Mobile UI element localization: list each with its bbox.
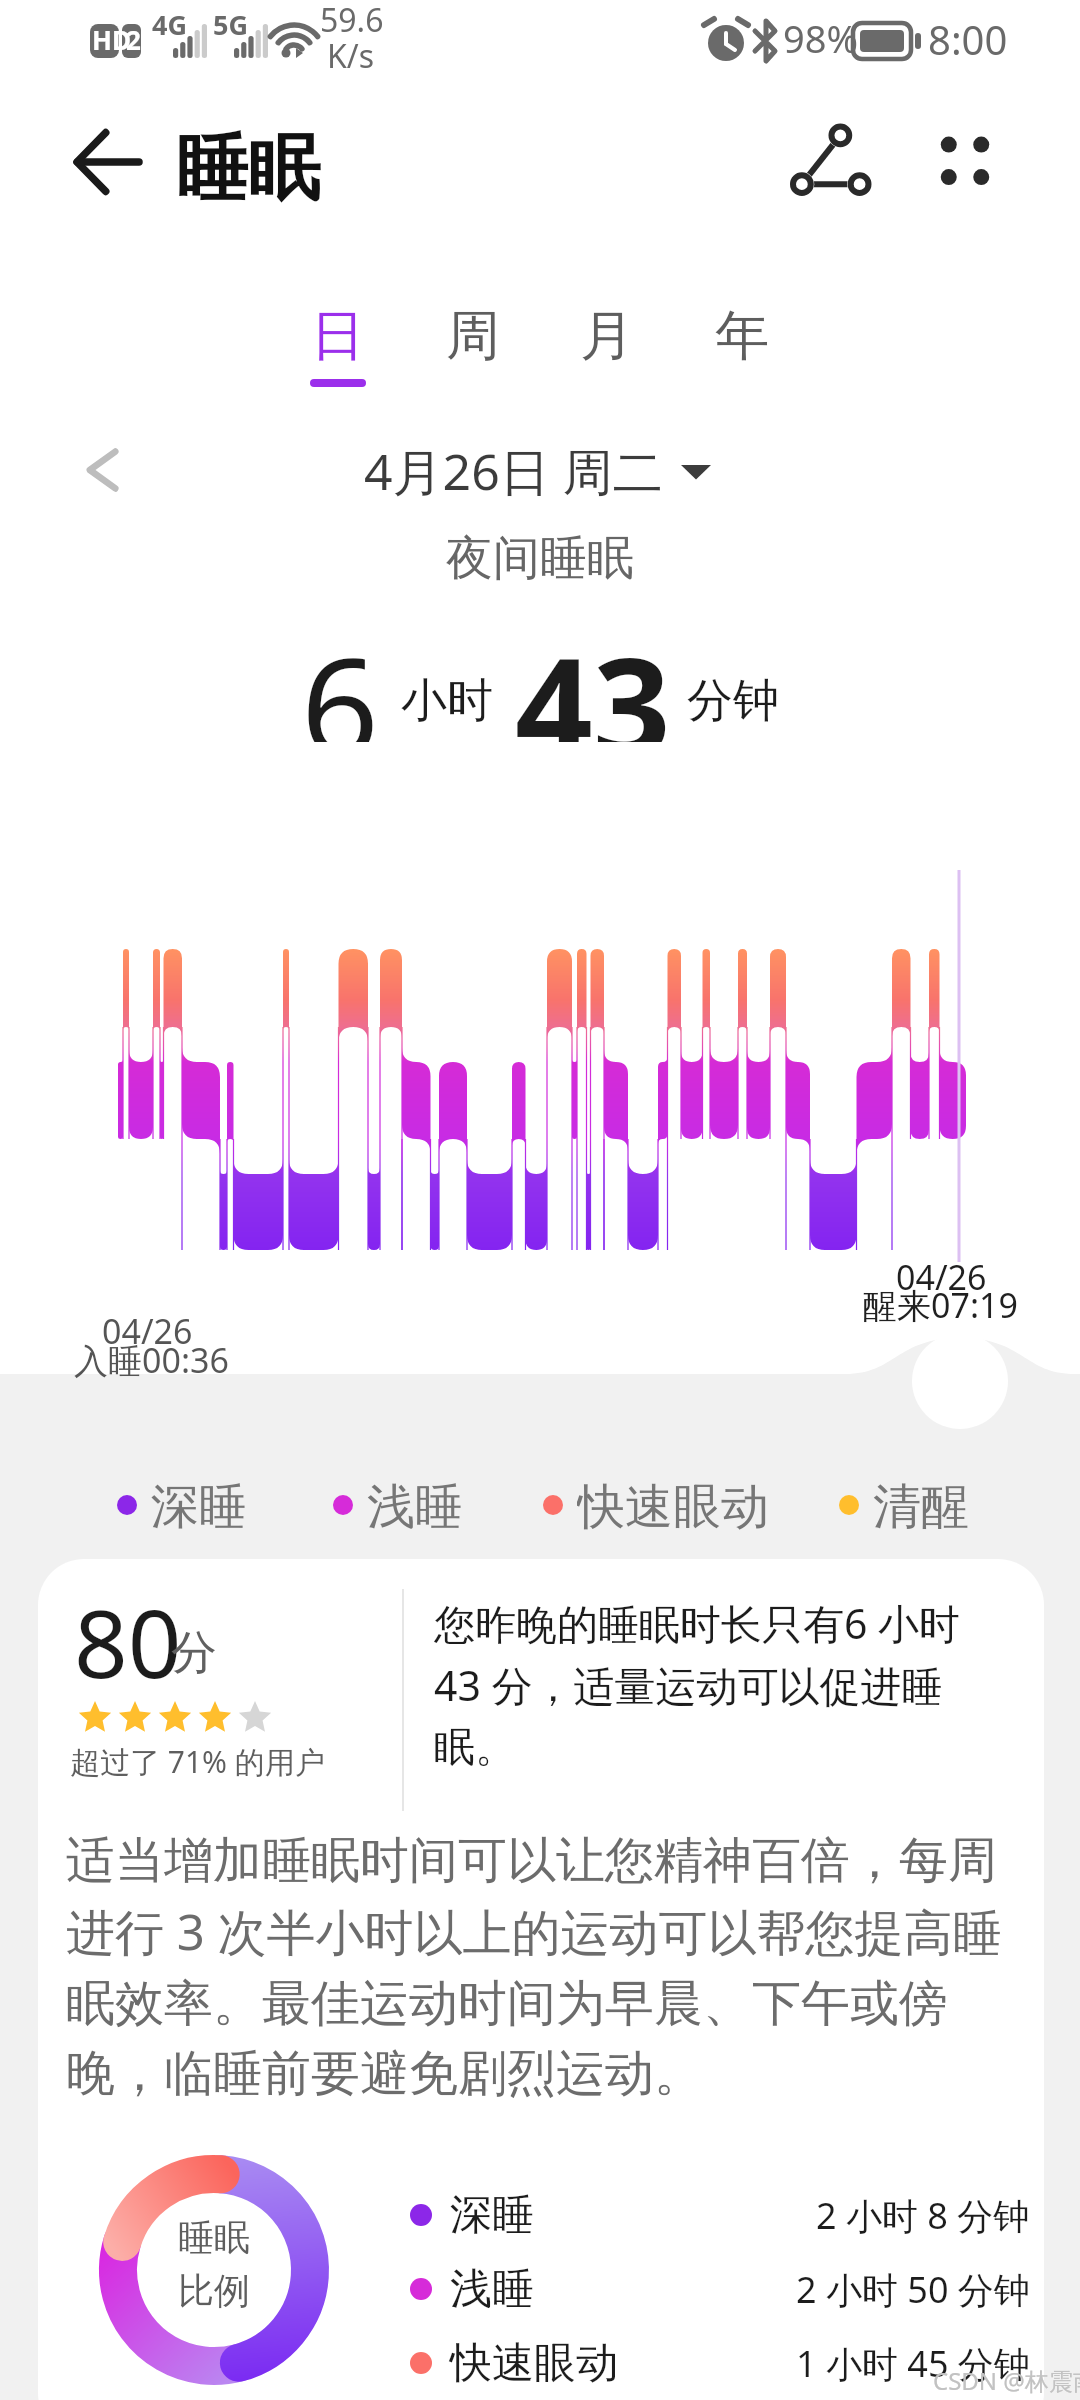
staticText: CSDN @林震南 — [933, 2364, 1080, 2397]
button[interactable]: Back — [62, 117, 152, 207]
staticText: 4G — [152, 6, 187, 43]
staticText: 深睡 — [151, 1477, 247, 1533]
button[interactable]: 年 — [686, 302, 798, 408]
staticText: 浅睡 — [450, 2263, 534, 2316]
staticText: 夜间睡眠 — [446, 529, 634, 588]
staticText: 周 — [446, 302, 500, 370]
button[interactable]: 80 — [38, 1559, 1044, 2400]
staticText: 5G — [213, 6, 248, 43]
staticText: 1 小时 45 分钟 — [796, 2339, 1030, 2388]
staticText: 睡眠 比例 — [99, 2215, 329, 2314]
staticText: 2 小时 50 分钟 — [796, 2265, 1030, 2314]
button[interactable]: 快速眼动 — [539, 1477, 773, 1533]
staticText: 清醒 — [873, 1477, 969, 1533]
staticText: 快速眼动 — [450, 2337, 618, 2390]
button[interactable]: 清醒 — [835, 1477, 973, 1533]
staticText: 月 — [580, 302, 634, 370]
staticText: 您昨晚的睡眠时长只有6 小时 43 分，适量运动可以促进睡眠。 — [434, 1595, 994, 1773]
button[interactable]: 快速眼动 — [410, 2331, 1030, 2395]
staticText: 2 小时 8 分钟 — [816, 2191, 1030, 2240]
staticText: 80 — [74, 1578, 182, 1706]
staticText: 59.6 — [320, 0, 384, 42]
staticText: 98% — [783, 12, 859, 64]
staticText: 分钟 — [687, 672, 779, 730]
staticText: 小时 — [401, 672, 493, 730]
staticText: 2 — [126, 22, 141, 57]
staticText: 入睡00:36 — [74, 1337, 229, 1383]
button[interactable]: More options — [915, 112, 1015, 212]
staticText: 浅睡 — [367, 1477, 463, 1533]
staticText: 醒来07:19 — [863, 1282, 1018, 1328]
staticText: 超过了 71% 的用户 — [70, 1741, 325, 1782]
staticText: 04/26 — [102, 1308, 193, 1354]
button[interactable]: Share — [780, 112, 880, 212]
staticText: 4月26日 周二 — [364, 437, 663, 505]
button[interactable]: 深睡 — [113, 1477, 251, 1533]
staticText: 分 — [171, 1624, 217, 1682]
staticText: 年 — [715, 302, 769, 370]
staticText: 睡眠 — [176, 124, 320, 215]
button[interactable]: Previous day — [58, 425, 148, 515]
button[interactable]: 周 — [417, 302, 529, 408]
button[interactable]: 日 — [282, 302, 394, 408]
button[interactable]: 月 — [551, 302, 663, 408]
staticText: 8:00 — [928, 12, 1008, 66]
staticText: K/s — [327, 34, 375, 78]
staticText: 04/26 — [896, 1254, 987, 1300]
button[interactable]: 4月26日 周二 — [360, 434, 715, 508]
staticText: 日 — [311, 302, 365, 370]
staticText: 深睡 — [450, 2189, 534, 2242]
staticText: HD — [92, 22, 131, 57]
staticText: 快速眼动 — [577, 1477, 769, 1533]
button[interactable]: 浅睡 — [329, 1477, 467, 1533]
staticText: 43 — [515, 612, 671, 742]
staticText: 适当增加睡眠时间可以让您精神百倍，每周进行 3 次半小时以上的运动可以帮您提高睡… — [66, 1830, 1006, 2105]
button[interactable]: 深睡 — [410, 2183, 1030, 2247]
button[interactable]: 浅睡 — [410, 2257, 1030, 2321]
staticText: 6 — [301, 612, 379, 742]
